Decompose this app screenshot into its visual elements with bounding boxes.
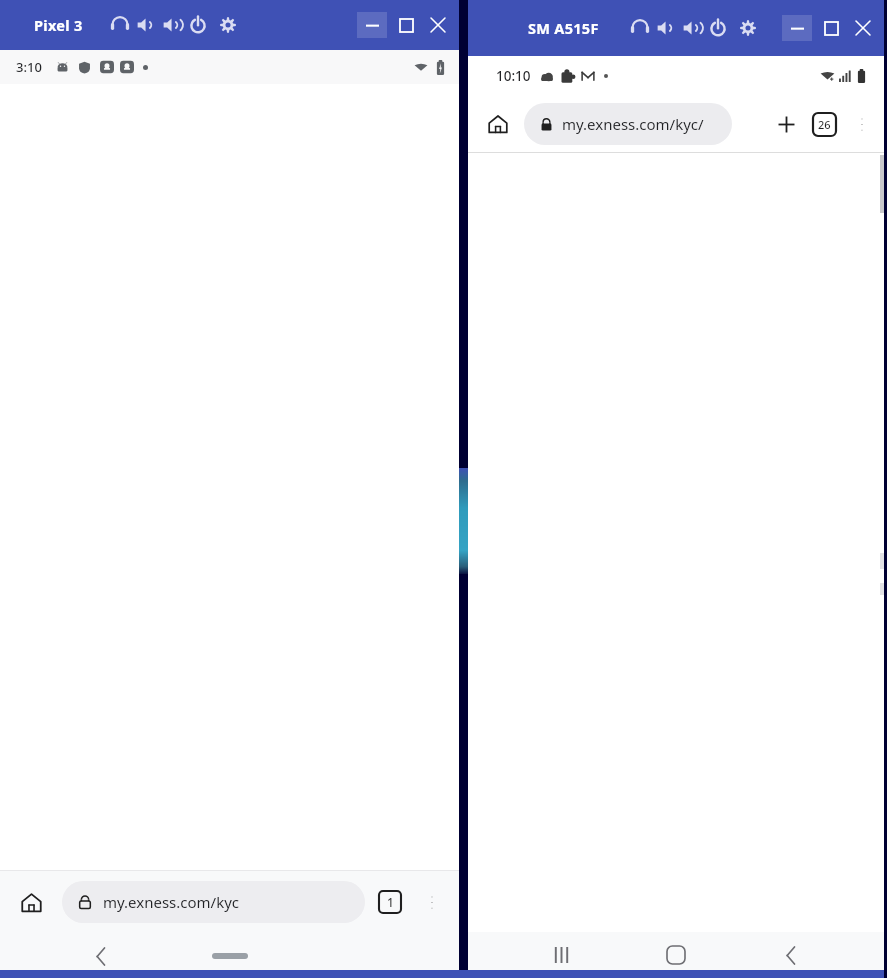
button[interactable]: Home gesture [212,953,248,959]
button[interactable]: Headphones [109,14,131,36]
staticText: SM A515F [528,18,599,38]
button[interactable]: Back [84,939,118,973]
button[interactable]: Headphones [629,17,651,39]
button[interactable]: Recent apps [539,933,583,977]
staticText: 3:10 [16,58,42,76]
button[interactable]: New tab [769,107,803,141]
staticText: my.exness.com/kyc/ [562,114,704,134]
button[interactable]: Volume down [655,17,677,39]
button[interactable]: Home [10,881,52,923]
button[interactable]: Close [850,15,876,41]
staticText: Pixel 3 [34,15,83,35]
button[interactable]: Home [654,933,698,977]
staticText: my.exness.com/kyc [103,892,240,912]
button[interactable]: my.exness.com/kyc [62,881,365,923]
button[interactable]: Close [425,12,451,38]
staticText: 26 [818,117,831,132]
button[interactable]: Switch tabs, 26 open [813,113,836,136]
button[interactable]: More options [415,885,449,919]
button[interactable]: Home [478,104,518,144]
staticText: 10:10 [496,67,531,85]
button[interactable]: Maximize [393,12,419,38]
button[interactable]: Power [707,17,729,39]
button[interactable]: Back [769,933,813,977]
button[interactable]: Minimize [782,15,812,41]
button[interactable]: Settings [737,17,759,39]
button[interactable]: Volume up [681,17,703,39]
button[interactable]: Volume up [161,14,183,36]
staticText: 1 [387,894,394,910]
button[interactable]: Maximize [818,15,844,41]
button[interactable]: Volume down [135,14,157,36]
button[interactable]: Switch tabs, 1 open [379,891,401,913]
button[interactable]: Minimize [357,12,387,38]
button[interactable]: Power [187,14,209,36]
button[interactable]: Settings [217,14,239,36]
button[interactable]: More options [846,108,878,140]
button[interactable]: my.exness.com/kyc/ [524,103,732,145]
